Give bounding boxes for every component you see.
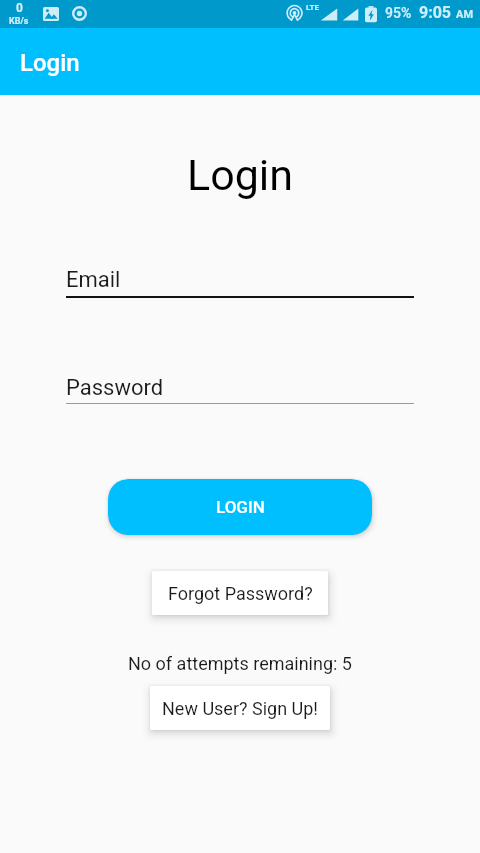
staticText: 0	[16, 1, 23, 15]
staticText: Login	[20, 49, 80, 77]
button[interactable]: Email	[0, 267, 480, 298]
button[interactable]: LOGIN	[108, 479, 372, 535]
staticText: Password	[66, 375, 164, 401]
staticText: 9:05	[419, 3, 452, 22]
staticText: Login	[0, 150, 480, 200]
other: Screenshot saved	[43, 6, 59, 22]
other: Screen recorder	[72, 6, 87, 21]
staticText: LTE	[306, 3, 319, 12]
staticText: 95%	[385, 5, 412, 21]
staticText: Email	[66, 267, 121, 293]
staticText: LOGIN	[216, 497, 265, 517]
staticText: KB/s	[9, 16, 29, 27]
staticText: New User? Sign Up!	[162, 698, 318, 719]
staticText: No of attempts remaining: 5	[0, 653, 480, 674]
staticText: AM	[456, 8, 474, 21]
button[interactable]: New User? Sign Up!	[150, 686, 330, 730]
other: Mobile signal SIM 2	[342, 8, 359, 21]
button[interactable]: Password	[0, 375, 480, 404]
other: Mobile signal SIM 1	[320, 8, 338, 21]
button[interactable]: Forgot Password?	[152, 571, 328, 615]
staticText: Forgot Password?	[168, 583, 313, 604]
other: Battery charging 95 percent	[365, 5, 377, 23]
other: Hotspot on	[286, 5, 303, 22]
